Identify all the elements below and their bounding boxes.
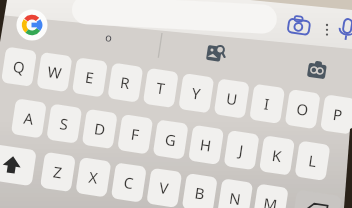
button[interactable]: Google search with on-screen keyboard [0,0,352,208]
